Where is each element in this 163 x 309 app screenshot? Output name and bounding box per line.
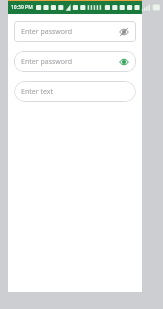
button[interactable]: Enter password (14, 21, 136, 42)
staticText: Enter password (21, 27, 117, 37)
button[interactable]: Enter password (14, 51, 136, 72)
button[interactable]: Show password (117, 25, 130, 38)
button[interactable]: Hide password (117, 55, 130, 68)
staticText: Enter password (21, 57, 117, 67)
button[interactable]: Enter text (14, 81, 136, 102)
staticText: 10:39 PM (11, 4, 33, 11)
staticText: Enter text (21, 87, 130, 97)
